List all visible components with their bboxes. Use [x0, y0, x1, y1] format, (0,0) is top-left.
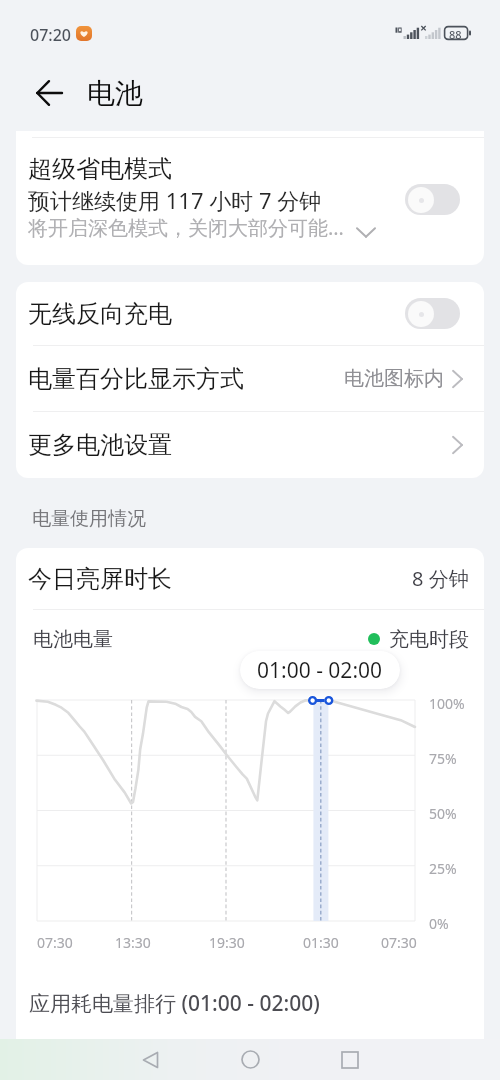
- button[interactable]: 无线反向充电: [28, 282, 460, 345]
- button[interactable]: Recents: [325, 1039, 375, 1080]
- staticText: 07:30: [37, 933, 73, 952]
- staticText: 75%: [429, 749, 457, 768]
- staticText: 50%: [429, 804, 457, 823]
- button[interactable]: 电量百分比显示方式: [28, 346, 464, 411]
- staticText: 88: [449, 27, 462, 41]
- staticText: 超级省电模式: [28, 154, 172, 184]
- button[interactable]: 应用耗电量排行 (01:00 - 02:00): [29, 967, 484, 1040]
- staticText: 电量百分比显示方式: [28, 364, 344, 394]
- staticText: 07:20: [30, 24, 71, 46]
- staticText: 07:30: [381, 933, 417, 952]
- staticText: 电量使用情况: [32, 507, 146, 531]
- staticText: 应用耗电量排行 (01:00 - 02:00): [29, 989, 320, 1018]
- staticText: 13:30: [115, 933, 151, 952]
- button[interactable]: Back: [25, 71, 75, 115]
- button[interactable]: 今日亮屏时长: [28, 548, 469, 609]
- staticText: 100%: [429, 694, 465, 713]
- button[interactable]: 超级省电模式: [16, 131, 484, 265]
- staticText: 电池图标内: [344, 366, 444, 391]
- button[interactable]: Back: [125, 1039, 175, 1080]
- staticText: 电池电量: [33, 627, 368, 652]
- staticText: 19:30: [209, 933, 245, 952]
- button[interactable]: Toggle off: [405, 184, 460, 215]
- staticText: 充电时段: [389, 627, 469, 652]
- button[interactable]: Expand: [350, 216, 382, 248]
- button[interactable]: 更多电池设置: [28, 412, 464, 478]
- staticText: 更多电池设置: [28, 430, 452, 460]
- staticText: 0%: [429, 914, 449, 933]
- staticText: 预计继续使用 117 小时 7 分钟: [28, 185, 322, 215]
- button[interactable]: Home: [225, 1039, 275, 1080]
- staticText: 01:30: [303, 933, 339, 952]
- staticText: 今日亮屏时长: [28, 564, 412, 594]
- button[interactable]: Toggle off: [405, 298, 460, 329]
- staticText: 无线反向充电: [28, 299, 405, 329]
- staticText: 电池: [87, 76, 143, 111]
- button[interactable]: 01:00 - 02:00: [240, 651, 400, 689]
- staticText: 将开启深色模式，关闭大部分可能…: [28, 214, 344, 241]
- staticText: 25%: [429, 859, 457, 878]
- staticText: 01:00 - 02:00: [257, 656, 383, 685]
- staticText: 8 分钟: [412, 565, 469, 592]
